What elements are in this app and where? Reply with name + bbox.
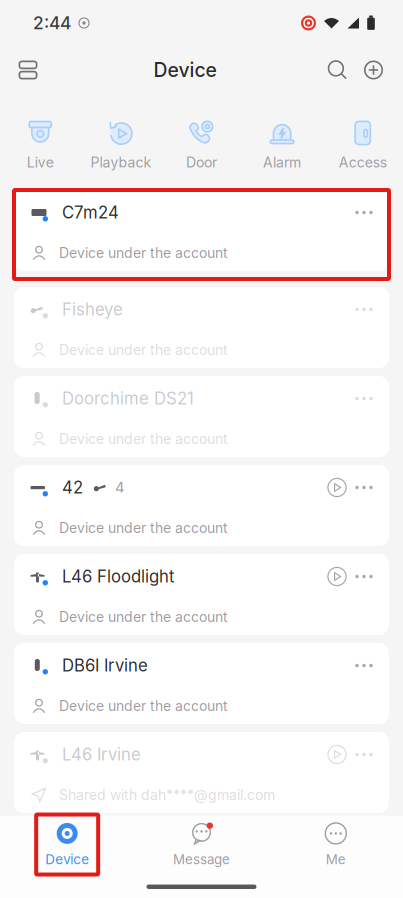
button[interactable]: Device [0,815,134,873]
staticText: Device [45,851,89,867]
staticText: Door [186,154,217,171]
button[interactable]: More options [351,473,377,501]
button[interactable]: More options [351,562,377,590]
button[interactable]: L46 Irvine [14,732,389,813]
button[interactable]: Play live view [323,473,351,501]
staticText: Device under the account [59,697,228,714]
button[interactable]: More options [351,198,377,226]
button[interactable]: Door [161,94,242,190]
staticText: 2:44 [33,12,71,33]
button[interactable]: More options [351,295,377,323]
button[interactable]: Access [322,94,403,190]
staticText: Message [173,851,230,867]
button[interactable]: Search [321,46,354,94]
staticText: DB6I Irvine [62,655,148,676]
button[interactable]: L46 Floodlight [14,554,389,635]
button[interactable]: DB6I Irvine [14,643,389,724]
button[interactable]: Play live view [323,562,351,590]
staticText: Device [153,58,216,82]
staticText: Access [339,154,387,171]
staticText: Fisheye [62,299,123,320]
button[interactable]: Playback [81,94,161,190]
button[interactable]: Me [269,815,403,873]
staticText: 4 [115,479,124,496]
button[interactable]: Switch layout [7,46,49,94]
staticText: L46 Floodlight [62,566,174,587]
button[interactable]: Add device [354,46,393,94]
staticText: Doorchime DS21 [62,388,194,409]
staticText: C7m24 [62,202,119,223]
staticText: Device under the account [59,519,228,536]
staticText: L46 Irvine [62,744,141,765]
staticText: Alarm [263,154,301,171]
button[interactable]: Message [134,815,269,873]
button[interactable]: Fisheye [14,287,389,368]
staticText: Playback [90,154,151,171]
button[interactable]: 42 [14,465,389,546]
button[interactable]: Play live view [323,740,351,768]
button[interactable]: More options [351,651,377,679]
button[interactable]: Alarm [242,94,322,190]
button[interactable]: Doorchime DS21 [14,376,389,457]
staticText: Device under the account [59,341,228,358]
staticText: 42 [62,477,83,498]
staticText: Device under the account [59,244,228,261]
staticText: Me [326,851,346,867]
button[interactable]: More options [351,384,377,412]
button[interactable]: Live [0,94,81,190]
button[interactable]: More options [351,740,377,768]
button[interactable]: C7m24 [14,190,389,271]
staticText: Device under the account [59,430,228,447]
staticText: Device under the account [59,608,228,625]
staticText: Shared with dah****@gmail.com [59,786,275,803]
staticText: Live [27,154,54,171]
